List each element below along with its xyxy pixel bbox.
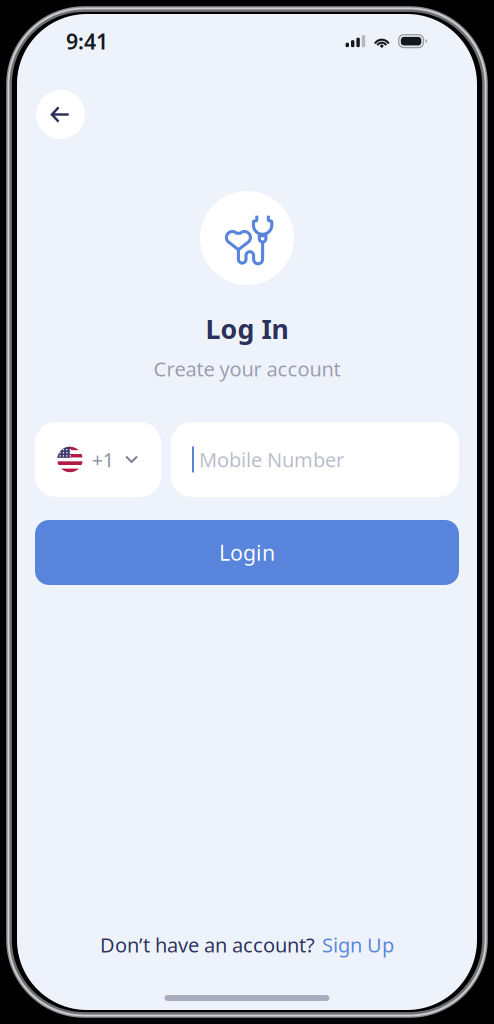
staticText: Login bbox=[219, 538, 275, 567]
staticText: Create your account bbox=[153, 355, 340, 382]
button[interactable]: Back bbox=[36, 90, 85, 139]
button[interactable]: Sign Up bbox=[315, 931, 394, 958]
button[interactable]: Select country code, currently plus one bbox=[35, 422, 161, 497]
staticText: Log In bbox=[205, 311, 288, 346]
staticText: +1 bbox=[92, 446, 114, 473]
staticText: Don’t have an account? bbox=[100, 931, 315, 958]
staticText: 9:41 bbox=[66, 27, 108, 55]
staticText: Sign Up bbox=[322, 931, 394, 958]
button[interactable]: Login bbox=[35, 520, 459, 585]
staticText: Mobile Number bbox=[199, 446, 344, 473]
